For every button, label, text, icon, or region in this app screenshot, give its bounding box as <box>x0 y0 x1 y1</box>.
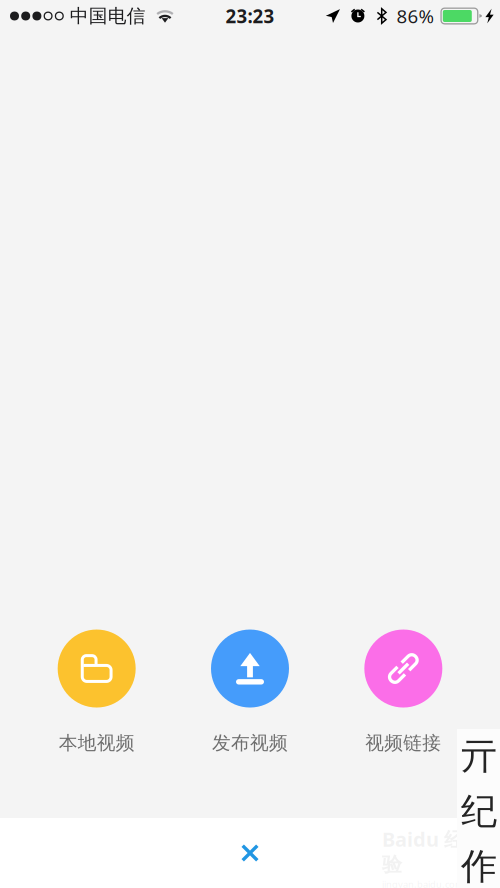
button[interactable]: 视频链接 <box>327 629 480 754</box>
staticText: 亓 <box>461 734 497 779</box>
staticText: 视频链接 <box>365 731 441 754</box>
staticText: 23:23 <box>226 4 275 28</box>
button[interactable]: 本地视频 <box>20 629 173 754</box>
staticText: 作 <box>461 844 497 888</box>
staticText: 中国电信 <box>70 4 146 27</box>
staticText: 本地视频 <box>59 731 135 754</box>
button[interactable]: 发布视频 <box>173 629 327 754</box>
button[interactable]: Close <box>214 825 286 881</box>
staticText: 86% <box>396 4 434 28</box>
staticText: 发布视频 <box>212 731 288 754</box>
staticText: 纪 <box>461 789 497 834</box>
staticText: Baidu 经验 <box>382 826 464 877</box>
